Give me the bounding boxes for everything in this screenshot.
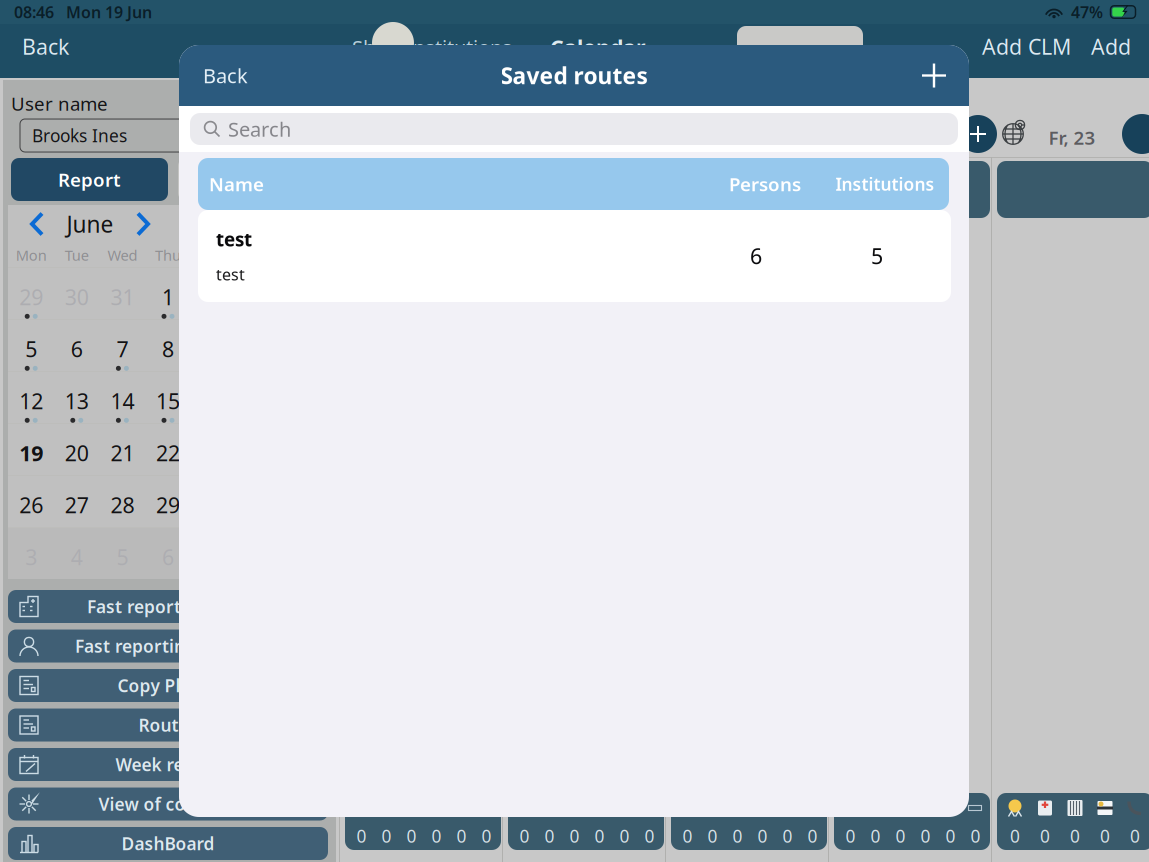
button[interactable]: Report	[11, 158, 168, 201]
button[interactable]: Back	[193, 53, 258, 97]
staticText: 3	[253, 283, 265, 311]
staticText: 0	[456, 824, 466, 847]
button[interactable]: test	[198, 210, 951, 302]
staticText: 0	[732, 824, 742, 847]
staticText: 0	[1100, 824, 1110, 847]
staticText: 47%	[1071, 1, 1103, 23]
staticText: 14	[110, 387, 134, 415]
staticText: 0	[807, 824, 817, 847]
staticText: 8	[162, 335, 174, 363]
staticText: 0	[406, 824, 416, 847]
staticText: test	[216, 264, 245, 285]
staticText: Calendar	[550, 33, 646, 61]
staticText: 21	[110, 439, 134, 467]
button[interactable]: DashBoard	[8, 827, 328, 860]
staticText: Brooks Ines	[32, 124, 127, 147]
staticText: 29	[156, 491, 180, 519]
staticText: 19	[19, 439, 43, 467]
button[interactable]: Week report	[8, 748, 328, 781]
staticText: Persons	[729, 172, 801, 196]
staticText: 5	[871, 242, 883, 270]
button[interactable]: Add CLM	[976, 24, 1077, 68]
button[interactable]: Previous month	[20, 207, 54, 241]
staticText: 0	[1040, 824, 1050, 847]
button[interactable]: Fast reporting person	[8, 629, 328, 662]
button[interactable]: Map	[1000, 120, 1026, 148]
staticText: 08:46	[14, 1, 54, 23]
staticText: Fast reporting person	[75, 634, 261, 657]
staticText: 0	[1070, 824, 1080, 847]
staticText: 27	[65, 491, 89, 519]
staticText: 3	[25, 543, 37, 571]
staticText: 0	[356, 824, 366, 847]
staticText: 0	[970, 824, 980, 847]
staticText: 0	[481, 824, 491, 847]
staticText: 29	[19, 283, 43, 311]
staticText: 0	[757, 824, 767, 847]
staticText: 5	[25, 335, 37, 363]
staticText: 0	[1010, 824, 1020, 847]
staticText: Name	[209, 172, 264, 196]
staticText: 2	[208, 283, 220, 311]
button[interactable]: Add route	[911, 52, 957, 98]
staticText: 28	[110, 491, 134, 519]
staticText: 0	[1130, 824, 1140, 847]
staticText: 6	[71, 335, 83, 363]
staticText: Add CLM	[982, 32, 1071, 61]
staticText: 12	[19, 387, 43, 415]
staticText: 4	[71, 543, 83, 571]
staticText: 0	[945, 824, 955, 847]
staticText: Saved routes	[500, 60, 647, 90]
staticText: Show institutions	[352, 34, 512, 61]
staticText: 0	[544, 824, 554, 847]
staticText: 0	[682, 824, 692, 847]
staticText: Mon	[16, 245, 47, 265]
staticText: 0	[782, 824, 792, 847]
staticText: Add	[1091, 32, 1131, 61]
staticText: 0	[431, 824, 441, 847]
staticText: Fri	[205, 245, 223, 265]
staticText: Search	[228, 116, 291, 142]
staticText: Mon 19 Jun	[66, 1, 152, 23]
staticText: 0	[707, 824, 717, 847]
staticText: Back	[22, 32, 69, 61]
staticText: 30	[65, 283, 89, 311]
button[interactable]: Routes	[8, 708, 328, 741]
staticText: Report	[58, 167, 121, 192]
button[interactable]: Next month	[126, 207, 160, 241]
button[interactable]: View of conflicts	[8, 787, 328, 820]
staticText: Fr, 23	[1048, 125, 1095, 150]
staticText: 1	[162, 283, 174, 311]
staticText: 0	[381, 824, 391, 847]
staticText: June	[66, 209, 113, 239]
button[interactable]: Back	[16, 24, 75, 68]
staticText: 26	[19, 491, 43, 519]
staticText: View of conflicts	[98, 792, 237, 815]
button[interactable]: Add	[1085, 24, 1137, 68]
button[interactable]: Fast reporting CLM	[8, 590, 328, 623]
button[interactable]: Add entry	[959, 115, 997, 153]
staticText: Thu	[155, 245, 181, 265]
staticText: 6	[162, 543, 174, 571]
staticText: 0	[569, 824, 579, 847]
staticText: User name	[11, 91, 108, 116]
staticText: Copy Plan A	[117, 674, 218, 697]
staticText: 20	[65, 439, 89, 467]
button[interactable]: Copy Plan A	[8, 669, 328, 702]
staticText: 15	[156, 387, 180, 415]
staticText: 7	[116, 335, 128, 363]
staticText: test	[216, 227, 252, 252]
